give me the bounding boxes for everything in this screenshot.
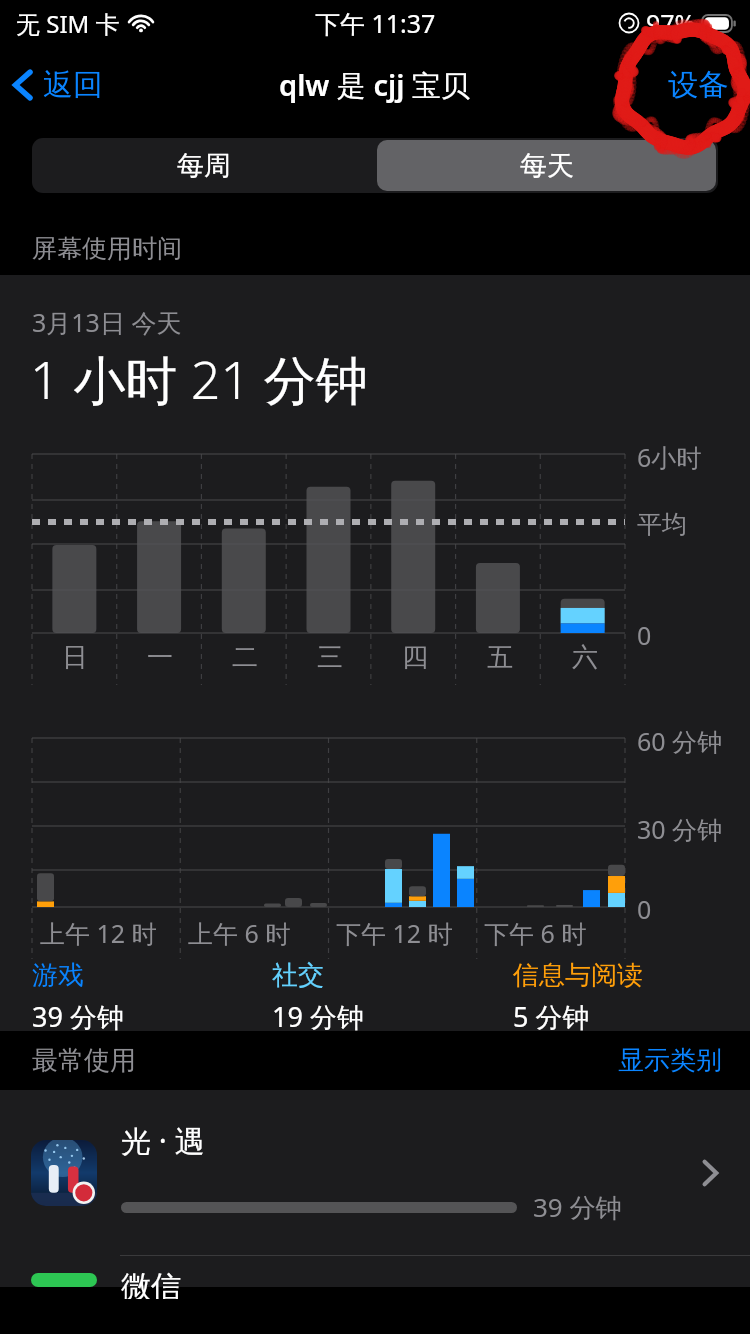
- staticText: 39 分钟: [533, 1189, 622, 1225]
- staticText: 每天: [520, 149, 574, 183]
- staticText: 无 SIM 卡: [16, 7, 120, 40]
- staticText: 上午 6 时: [188, 916, 291, 950]
- staticText: 五: [487, 641, 513, 674]
- button[interactable]: 每天: [377, 140, 716, 191]
- staticText: 游戏: [32, 959, 84, 992]
- staticText: 四: [402, 641, 428, 674]
- staticText: 19 分钟: [272, 998, 364, 1031]
- staticText: 5 分钟: [513, 998, 590, 1031]
- button[interactable]: 微信: [0, 1256, 750, 1287]
- staticText: 每周: [177, 149, 231, 183]
- staticText: 信息与阅读: [513, 959, 643, 992]
- staticText: 60 分钟: [637, 724, 723, 758]
- staticText: 39 分钟: [32, 998, 124, 1031]
- button[interactable]: 游戏: [32, 959, 272, 1031]
- staticText: 6小时: [637, 440, 702, 474]
- button[interactable]: 返回: [0, 58, 115, 112]
- button[interactable]: 每周: [32, 138, 375, 193]
- staticText: 最常使用: [32, 1044, 136, 1077]
- staticText: 上午 12 时: [40, 916, 157, 950]
- staticText: 下午 12 时: [336, 916, 453, 950]
- button[interactable]: 光 · 遇: [0, 1090, 750, 1255]
- staticText: 平均: [637, 509, 687, 540]
- staticText: 下午 6 时: [484, 916, 587, 950]
- staticText: 下午 11:37: [315, 6, 436, 40]
- staticText: 返回: [43, 66, 103, 104]
- button[interactable]: 设备: [652, 58, 750, 112]
- staticText: 三: [317, 641, 343, 674]
- staticText: 日: [62, 641, 88, 674]
- staticText: 97%: [646, 6, 696, 40]
- staticText: 社交: [272, 959, 324, 992]
- staticText: 光 · 遇: [121, 1120, 205, 1161]
- staticText: qlw 是 cjj 宝贝: [279, 65, 471, 105]
- staticText: 设备: [668, 66, 728, 104]
- staticText: 1 小时 21 分钟: [30, 343, 368, 414]
- button[interactable]: 信息与阅读: [513, 959, 730, 1031]
- other: 查看详情: [696, 1159, 724, 1187]
- staticText: 3月13日 今天: [32, 305, 182, 339]
- staticText: 0: [637, 618, 652, 652]
- staticText: 二: [232, 641, 258, 674]
- staticText: 0: [637, 892, 652, 926]
- button[interactable]: 显示类别: [602, 1038, 750, 1083]
- button[interactable]: 社交: [272, 959, 513, 1031]
- staticText: 微信: [121, 1268, 181, 1299]
- staticText: 一: [147, 641, 173, 674]
- staticText: 显示类别: [618, 1044, 722, 1077]
- staticText: 30 分钟: [637, 812, 723, 846]
- staticText: 六: [572, 641, 598, 674]
- staticText: 屏幕使用时间: [32, 233, 182, 264]
